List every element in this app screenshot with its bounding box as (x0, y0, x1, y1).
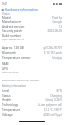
staticText: Model (2, 16, 11, 20)
staticText: Environment sensors not available (2, 79, 40, 82)
staticText: 87% (56, 89, 62, 93)
staticText: Mali-G78 MP20 (2, 71, 19, 74)
staticText: Level (2, 89, 10, 93)
staticText: Temperature sensor (2, 56, 31, 60)
button[interactable]: Back (1, 8, 5, 12)
button[interactable]: Approx. 128 GB (0, 46, 64, 50)
button[interactable]: Android version (0, 25, 64, 29)
staticText: Hardware information (5, 8, 38, 12)
button[interactable]: Bluetooth (0, 51, 64, 55)
staticText: Android version (2, 25, 25, 29)
button[interactable]: Level (0, 89, 64, 93)
staticText: 4285 mV (typ.) (43, 113, 62, 117)
staticText: g5123b-95797 (43, 46, 62, 50)
staticText: Status (2, 94, 11, 98)
staticText: Temperature (2, 108, 21, 112)
staticText: Health (2, 98, 12, 102)
button[interactable]: Status (0, 94, 64, 98)
staticText: 13 (58, 25, 62, 29)
staticText: 5.10.157-andr (43, 51, 62, 55)
button[interactable]: Build number (0, 34, 64, 38)
staticText: Manufacturer (2, 20, 22, 24)
staticText: Charging (49, 94, 62, 98)
button[interactable]: Voltage (0, 113, 64, 117)
staticText: Bluetooth (2, 51, 16, 55)
staticText: Pixel 6a (51, 16, 62, 20)
staticText: Battery information (2, 84, 27, 88)
button[interactable]: Temperature (0, 108, 64, 112)
staticText: 9:41 (2, 2, 8, 6)
staticText: TQ3A.230805.001.A2 (2, 38, 25, 41)
button[interactable]: RAM (0, 62, 64, 66)
staticText: GPU (2, 67, 9, 71)
staticText: Build number (2, 34, 22, 38)
button[interactable]: Health (0, 98, 64, 102)
staticText: Good, 4.28 V (45, 98, 62, 102)
staticText: Approx. 128 GB (2, 46, 24, 50)
staticText: bluejay (52, 56, 62, 60)
button[interactable]: Model (0, 16, 64, 20)
staticText: Li-ion polymer cell (38, 103, 62, 107)
staticText: Google (52, 20, 62, 24)
staticText: RAM (2, 62, 9, 66)
staticText: 31.2 °C / 88 °F (43, 108, 62, 112)
button[interactable]: Manufacturer (0, 20, 64, 24)
staticText: 2023-08-05 (47, 29, 62, 33)
staticText: Security patch (2, 29, 22, 33)
button[interactable]: GPU (0, 67, 64, 71)
staticText: Device (2, 12, 10, 16)
staticText: Technology (2, 103, 19, 107)
button[interactable]: Security patch (0, 29, 64, 33)
button[interactable]: Technology (0, 103, 64, 107)
staticText: Voltage (2, 113, 13, 117)
button[interactable]: Temperature sensor (0, 56, 64, 60)
